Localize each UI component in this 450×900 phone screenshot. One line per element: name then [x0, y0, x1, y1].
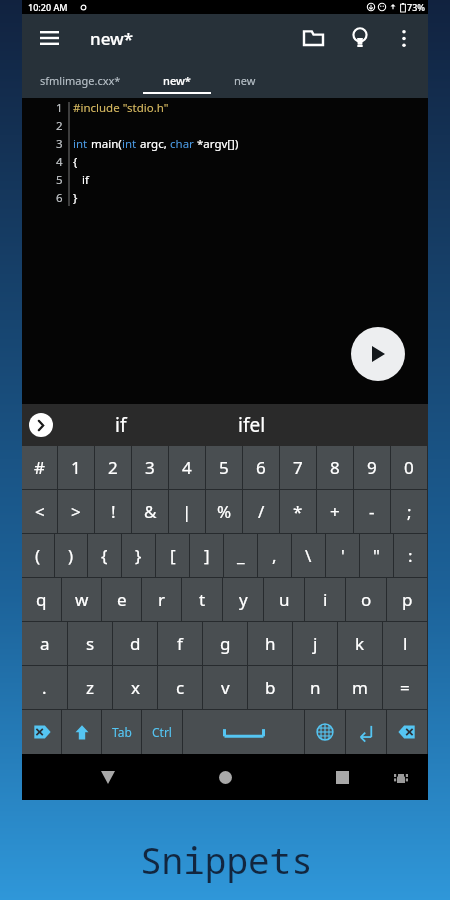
staticText: c — [176, 676, 185, 699]
button[interactable]: d — [113, 622, 157, 665]
button[interactable]: w — [62, 578, 101, 621]
button[interactable]: ifel — [215, 404, 289, 446]
button[interactable]: ; — [391, 490, 427, 533]
button[interactable]: More suggestions — [29, 413, 53, 437]
button[interactable]: o — [346, 578, 386, 621]
staticText: & — [144, 500, 157, 523]
button[interactable]: [ — [156, 534, 189, 577]
staticText: { — [73, 154, 78, 170]
button[interactable]: Home — [203, 755, 247, 799]
staticText: *argv[]) — [194, 136, 239, 152]
button[interactable]: % — [206, 490, 242, 533]
button[interactable]: p — [387, 578, 427, 621]
staticText: m — [352, 676, 368, 699]
button[interactable]: t — [182, 578, 222, 621]
button[interactable]: : — [394, 534, 427, 577]
staticText: main( — [88, 136, 122, 152]
button[interactable]: new — [211, 62, 279, 98]
button[interactable]: & — [132, 490, 168, 533]
button[interactable]: l — [383, 622, 427, 665]
button[interactable]: Back — [86, 755, 130, 799]
button[interactable]: if — [84, 404, 158, 446]
button[interactable]: 7 — [280, 446, 316, 489]
button[interactable]: i — [305, 578, 345, 621]
button[interactable]: / — [243, 490, 279, 533]
button[interactable]: x — [113, 666, 157, 709]
button[interactable]: h — [248, 622, 292, 665]
button[interactable]: v — [203, 666, 247, 709]
button[interactable]: b — [248, 666, 292, 709]
button[interactable]: new* — [143, 62, 211, 98]
button[interactable]: Recent apps — [320, 755, 364, 799]
button[interactable]: , — [258, 534, 291, 577]
button[interactable]: More options — [387, 21, 421, 55]
button[interactable]: y — [223, 578, 263, 621]
button[interactable]: # — [22, 446, 57, 489]
button[interactable]: Shift — [62, 710, 101, 754]
button[interactable]: 0 — [391, 446, 427, 489]
staticText: 2 — [56, 118, 63, 134]
button[interactable]: " — [360, 534, 393, 577]
button[interactable]: a — [22, 622, 67, 665]
button[interactable]: Hints — [343, 21, 377, 55]
button[interactable]: | — [169, 490, 205, 533]
button[interactable]: c — [158, 666, 202, 709]
staticText: : — [408, 544, 413, 567]
button[interactable]: k — [338, 622, 382, 665]
button[interactable]: 2 — [95, 446, 131, 489]
staticText: 6 — [256, 456, 266, 479]
button[interactable]: ' — [326, 534, 359, 577]
button[interactable]: Tab — [102, 710, 141, 754]
button[interactable]: 4 — [169, 446, 205, 489]
button[interactable]: = — [383, 666, 427, 709]
button[interactable]: ( — [22, 534, 54, 577]
button[interactable]: e — [102, 578, 141, 621]
button[interactable]: m — [338, 666, 382, 709]
button[interactable]: { — [88, 534, 121, 577]
button[interactable]: Enter — [346, 710, 386, 754]
button[interactable]: f — [158, 622, 202, 665]
button[interactable]: ) — [55, 534, 87, 577]
staticText: r — [158, 588, 166, 611]
button[interactable]: u — [264, 578, 304, 621]
button[interactable]: sfmlimage.cxx* — [22, 62, 138, 98]
button[interactable]: Run — [351, 327, 405, 381]
button[interactable]: ] — [190, 534, 223, 577]
button[interactable]: * — [280, 490, 316, 533]
button[interactable]: s — [68, 622, 112, 665]
button[interactable]: + — [317, 490, 353, 533]
button[interactable]: Open file — [296, 21, 330, 55]
staticText: { — [101, 544, 108, 567]
button[interactable]: n — [293, 666, 337, 709]
button[interactable]: Delete forward — [22, 710, 61, 754]
staticText: \ — [305, 544, 312, 567]
button[interactable]: Switch language — [305, 710, 345, 754]
button[interactable]: . — [22, 666, 67, 709]
button[interactable]: 6 — [243, 446, 279, 489]
button[interactable]: Ctrl — [142, 710, 182, 754]
button[interactable]: } — [122, 534, 155, 577]
button[interactable]: q — [22, 578, 61, 621]
button[interactable]: 1 — [58, 446, 94, 489]
button[interactable]: 5 — [206, 446, 242, 489]
button[interactable]: Hide keyboard — [379, 755, 423, 799]
button[interactable]: Navigation menu — [32, 21, 66, 55]
button[interactable]: 9 — [354, 446, 390, 489]
button[interactable]: > — [58, 490, 94, 533]
button[interactable]: 3 — [132, 446, 168, 489]
button[interactable]: r — [142, 578, 181, 621]
button[interactable]: z — [68, 666, 112, 709]
staticText: Ctrl — [152, 724, 172, 740]
button[interactable]: - — [354, 490, 390, 533]
staticText: 0 — [404, 456, 414, 479]
button[interactable]: _ — [224, 534, 257, 577]
button[interactable]: < — [22, 490, 57, 533]
button[interactable]: ! — [95, 490, 131, 533]
button[interactable]: \ — [292, 534, 325, 577]
button[interactable]: 8 — [317, 446, 353, 489]
button[interactable]: j — [293, 622, 337, 665]
button[interactable]: Space — [183, 710, 304, 754]
button[interactable]: g — [203, 622, 247, 665]
staticText: f — [177, 632, 183, 655]
button[interactable]: Backspace — [387, 710, 427, 754]
